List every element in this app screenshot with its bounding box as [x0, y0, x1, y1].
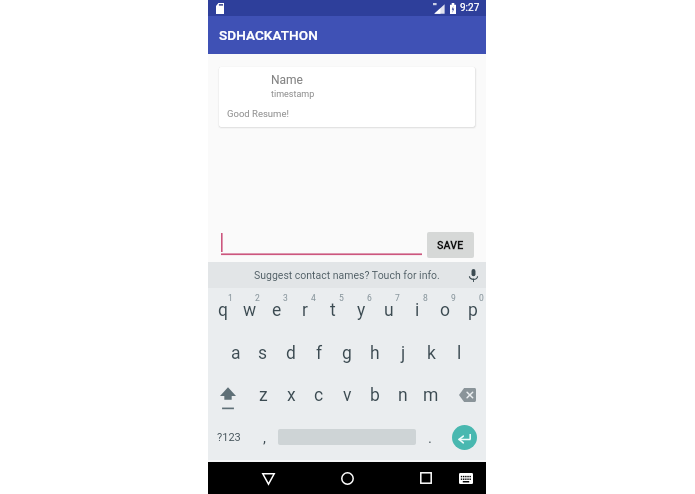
staticText: h [370, 343, 380, 364]
button[interactable]: b [360, 374, 388, 417]
button[interactable]: s [248, 331, 276, 374]
button[interactable]: 6 [346, 288, 374, 331]
staticText: n [398, 385, 408, 406]
staticText: d [286, 343, 296, 364]
button[interactable]: . [416, 417, 443, 460]
staticText: p [468, 300, 478, 321]
button[interactable]: 1 [208, 288, 235, 331]
staticText: 9 [451, 293, 456, 303]
staticText: t [330, 300, 336, 321]
staticText: x [287, 385, 296, 406]
staticText: m [423, 385, 439, 406]
staticText: 4 [311, 293, 316, 303]
staticText: a [231, 343, 241, 364]
staticText: ?123 [217, 431, 241, 444]
staticText: SAVE [437, 239, 464, 251]
staticText: j [401, 343, 406, 364]
staticText: y [357, 300, 366, 321]
button[interactable]: ?123 [208, 417, 250, 460]
button[interactable]: Voice input [460, 262, 486, 288]
button[interactable]: z [249, 374, 276, 417]
button[interactable]: Space [278, 417, 416, 460]
staticText: v [343, 385, 352, 406]
button[interactable]: v [332, 374, 360, 417]
button[interactable]: Backspace [444, 374, 486, 417]
staticText: , [263, 429, 266, 447]
staticText: 0 [479, 293, 484, 303]
staticText: q [218, 300, 228, 321]
button[interactable]: Home [324, 462, 371, 494]
button[interactable]: 9 [430, 288, 458, 331]
button[interactable]: SAVE [427, 232, 474, 258]
button[interactable]: k [416, 331, 444, 374]
button[interactable]: Enter [443, 417, 486, 460]
staticText: i [415, 300, 420, 321]
staticText: Suggest contact names? Touch for info. [254, 269, 440, 281]
button[interactable]: Recents [402, 462, 449, 494]
staticText: 9:27 [460, 2, 480, 14]
staticText: f [316, 343, 323, 364]
button[interactable]: 2 [235, 288, 262, 331]
button[interactable]: h [360, 331, 388, 374]
button[interactable]: f [304, 331, 332, 374]
staticText: u [384, 300, 394, 321]
staticText: Good Resume! [227, 108, 289, 119]
button[interactable]: 7 [374, 288, 402, 331]
staticText: r [302, 300, 308, 321]
staticText: b [370, 385, 380, 406]
button[interactable]: c [304, 374, 332, 417]
button[interactable]: , [250, 417, 278, 460]
button[interactable]: l [444, 331, 472, 374]
staticText: timestamp [271, 89, 315, 100]
staticText: g [342, 343, 352, 364]
staticText: Name [271, 73, 303, 87]
button[interactable]: 3 [262, 288, 290, 331]
staticText: 2 [255, 293, 260, 303]
staticText: l [457, 343, 462, 364]
button[interactable]: m [416, 374, 444, 417]
staticText: s [258, 343, 268, 364]
staticText: 8 [423, 293, 428, 303]
button[interactable]: 4 [290, 288, 318, 331]
staticText: w [243, 300, 257, 321]
staticText: 6 [367, 293, 372, 303]
button[interactable]: n [388, 374, 416, 417]
button[interactable]: d [276, 331, 304, 374]
staticText: 5 [339, 293, 344, 303]
button[interactable]: Back [245, 462, 292, 494]
staticText: 7 [395, 293, 400, 303]
button[interactable]: 8 [402, 288, 430, 331]
staticText: . [428, 429, 432, 447]
button[interactable]: j [388, 331, 416, 374]
staticText: 1 [228, 293, 233, 303]
button[interactable]: a [221, 331, 248, 374]
button[interactable]: Name [219, 67, 475, 127]
staticText: c [314, 385, 324, 406]
button[interactable]: g [332, 331, 360, 374]
button[interactable]: x [276, 374, 304, 417]
button[interactable]: Switch keyboard [448, 462, 484, 494]
button[interactable]: 0 [458, 288, 486, 331]
button[interactable]: Shift [208, 374, 249, 417]
staticText: e [272, 300, 282, 321]
staticText: 3 [283, 293, 288, 303]
button[interactable]: 5 [318, 288, 346, 331]
staticText: z [259, 385, 268, 406]
staticText: k [427, 343, 436, 364]
staticText: o [440, 300, 450, 321]
staticText: SDHACKATHON [219, 27, 318, 43]
